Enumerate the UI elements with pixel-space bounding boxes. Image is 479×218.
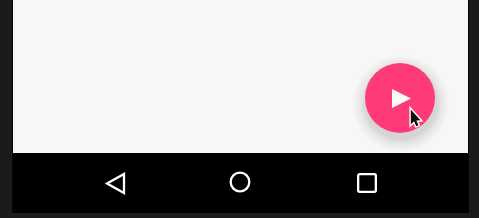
button[interactable]: Play	[365, 63, 435, 133]
button[interactable]: Back	[81, 153, 149, 213]
button[interactable]: Recent apps	[333, 153, 401, 213]
button[interactable]: Home	[206, 153, 274, 213]
